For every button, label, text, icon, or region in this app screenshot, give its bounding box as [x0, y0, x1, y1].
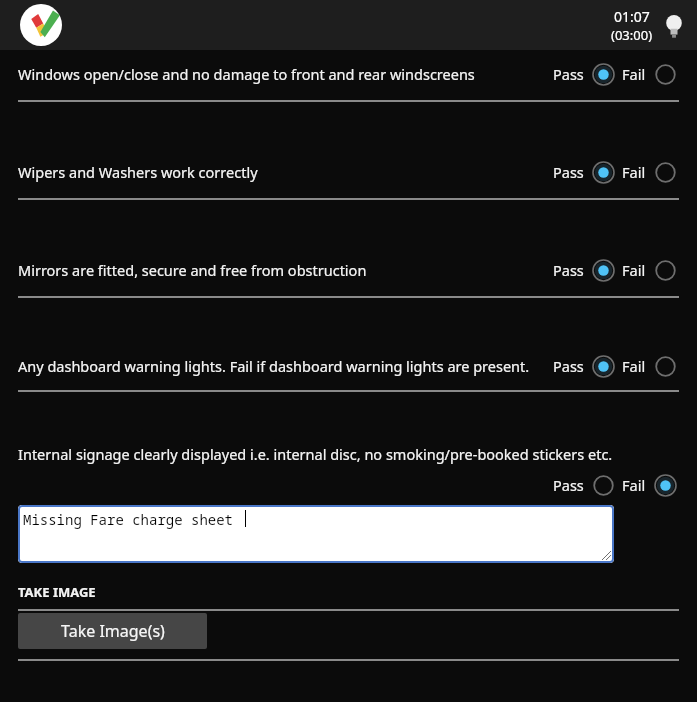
staticText: Missing Fare charge sheet	[23, 510, 233, 529]
button[interactable]: Missing Fare charge sheet	[18, 505, 614, 563]
button[interactable]: Fail	[651, 158, 679, 186]
button[interactable]: Mirrors are fitted, secure and free from…	[18, 200, 679, 298]
button[interactable]: Fail	[651, 256, 679, 284]
staticText: Internal signage clearly displayed i.e. …	[18, 444, 613, 464]
button[interactable]: Fail	[651, 471, 679, 499]
button[interactable]: Pass	[589, 158, 617, 186]
staticText: Fail	[622, 475, 646, 495]
staticText: Pass	[553, 475, 584, 495]
button[interactable]: Wipers and Washers work correctly	[18, 102, 679, 200]
button[interactable]: Pass	[589, 471, 617, 499]
staticText: Pass	[553, 356, 584, 376]
staticText: 01:07	[614, 7, 650, 26]
staticText: Pass	[553, 64, 584, 84]
button[interactable]: Internal signage clearly displayed i.e. …	[18, 444, 679, 499]
staticText: Mirrors are fitted, secure and free from…	[18, 260, 553, 280]
staticText: Take Image(s)	[61, 620, 165, 642]
button[interactable]: Pass	[589, 60, 617, 88]
staticText: TAKE IMAGE	[18, 583, 96, 601]
staticText: Pass	[553, 260, 584, 280]
staticText: Fail	[622, 162, 646, 182]
button[interactable]: Take Image(s)	[18, 613, 207, 649]
button[interactable]: App logo	[20, 4, 62, 46]
staticText: (03:00)	[611, 26, 653, 44]
button[interactable]: Any dashboard warning lights. Fail if da…	[18, 298, 679, 392]
staticText: Fail	[622, 64, 646, 84]
staticText: Fail	[622, 356, 646, 376]
staticText: Any dashboard warning lights. Fail if da…	[18, 356, 553, 376]
button[interactable]: Keep screen on	[659, 11, 689, 41]
button[interactable]: Fail	[651, 60, 679, 88]
button[interactable]: Pass	[589, 256, 617, 284]
button[interactable]: Windows open/close and no damage to fron…	[18, 50, 679, 102]
staticText: Windows open/close and no damage to fron…	[18, 64, 553, 84]
staticText: Wipers and Washers work correctly	[18, 162, 553, 182]
staticText: Pass	[553, 162, 584, 182]
staticText: Fail	[622, 260, 646, 280]
button[interactable]: Fail	[651, 352, 679, 380]
button[interactable]: Pass	[589, 352, 617, 380]
